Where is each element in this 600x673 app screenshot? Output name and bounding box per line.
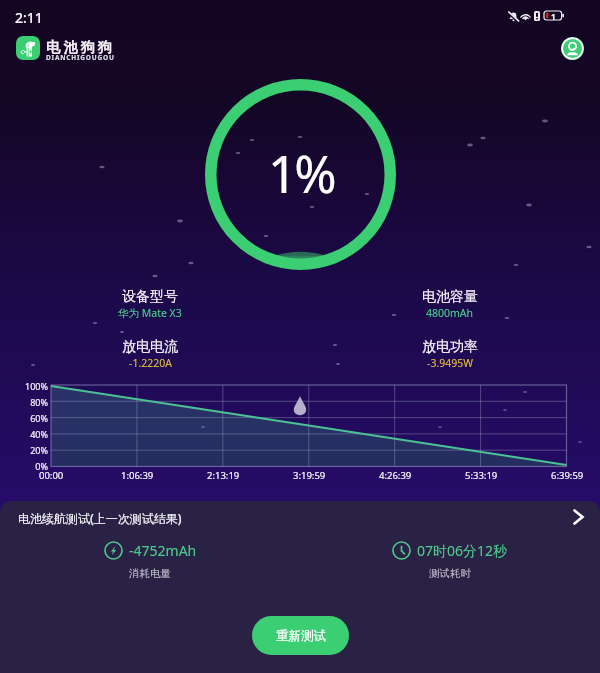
staticText: 40%: [30, 428, 48, 440]
staticText: 6:39:59: [551, 469, 584, 482]
staticText: 3:19:59: [293, 469, 326, 482]
staticText: 1%: [268, 138, 334, 207]
staticText: 100%: [25, 380, 48, 392]
staticText: 电池狗狗: [46, 39, 115, 57]
staticText: 5:33:19: [465, 469, 498, 482]
button[interactable]: Account: [561, 37, 584, 60]
staticText: 80%: [30, 396, 48, 408]
button[interactable]: 电池续航测试(上一次测试结果): [0, 501, 600, 537]
staticText: 00:00: [39, 469, 64, 482]
staticText: -4752mAh: [129, 541, 197, 560]
button[interactable]: DianChiGouGou: [16, 36, 40, 60]
staticText: 设备型号: [122, 288, 178, 306]
other: More: [573, 509, 584, 525]
staticText: -1.2220A: [129, 356, 172, 370]
staticText: 2:13:19: [207, 469, 240, 482]
staticText: 消耗电量: [129, 567, 171, 580]
staticText: 华为 Mate X3: [118, 306, 182, 320]
staticText: -3.9495W: [427, 356, 473, 370]
staticText: 2:11: [15, 8, 43, 27]
staticText: 重新测试: [276, 628, 326, 644]
staticText: 电池容量: [422, 288, 478, 306]
staticText: 07时06分12秒: [417, 541, 508, 560]
staticText: 4:26:39: [379, 469, 412, 482]
staticText: 放电功率: [422, 338, 478, 356]
staticText: 测试耗时: [429, 567, 471, 580]
staticText: 20%: [30, 444, 48, 456]
staticText: 放电电流: [122, 338, 178, 356]
staticText: 1: [551, 11, 556, 20]
staticText: 4800mAh: [426, 306, 474, 320]
staticText: 60%: [30, 412, 48, 424]
button[interactable]: 重新测试: [252, 616, 349, 655]
staticText: 1:06:39: [121, 469, 154, 482]
staticText: 0%: [35, 460, 48, 472]
staticText: DIANCHIGOUGOU: [46, 53, 115, 62]
staticText: 电池续航测试(上一次测试结果): [18, 510, 182, 526]
